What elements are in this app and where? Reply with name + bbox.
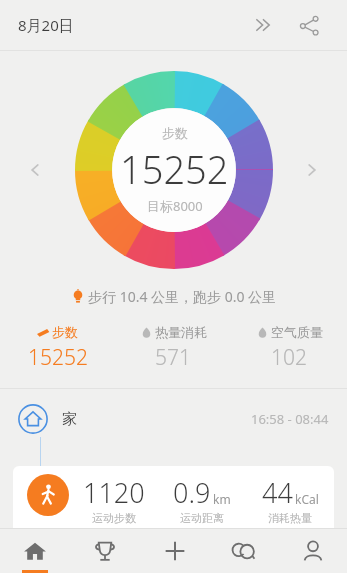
staticText: 运动步数 [92, 511, 136, 525]
button[interactable]: Messages [209, 528, 278, 573]
button[interactable]: Profile [278, 528, 347, 573]
staticText: 消耗热量 [268, 511, 312, 525]
button[interactable]: 空气质量 [231, 322, 347, 374]
staticText: 步数 [52, 324, 78, 340]
button[interactable]: 1120 [13, 466, 334, 536]
staticText: km [213, 491, 231, 507]
staticText: 102 [271, 343, 307, 372]
button[interactable]: 步数 [0, 322, 115, 374]
staticText: 空气质量 [271, 324, 323, 340]
staticText: 15252 [120, 143, 229, 195]
staticText: 16:58 - 08:44 [251, 410, 329, 428]
staticText: 家 [62, 410, 77, 429]
button[interactable]: Home [0, 528, 70, 573]
staticText: 15252 [28, 343, 88, 372]
button[interactable]: 热量消耗 [115, 322, 231, 374]
staticText: 571 [155, 343, 191, 372]
button[interactable]: Next [243, 5, 283, 45]
button[interactable]: Share [289, 5, 329, 45]
button[interactable]: Previous day [18, 153, 52, 187]
button[interactable]: 家 [0, 389, 347, 449]
button[interactable]: Add [140, 528, 209, 573]
staticText: 8月20日 [18, 15, 74, 35]
staticText: 目标8000 [147, 197, 203, 215]
staticText: 热量消耗 [155, 324, 207, 340]
staticText: 1120 [83, 474, 145, 511]
button[interactable]: Awards [70, 528, 140, 573]
staticText: 步行 10.4 公里，跑步 0.0 公里 [88, 287, 277, 306]
button[interactable]: 步数 [75, 71, 273, 269]
staticText: 0.9 [173, 474, 211, 511]
staticText: 44 [262, 474, 293, 511]
staticText: 运动距离 [180, 511, 224, 525]
button[interactable]: Next day [295, 153, 329, 187]
staticText: kCal [295, 491, 319, 507]
staticText: 步数 [162, 125, 188, 141]
